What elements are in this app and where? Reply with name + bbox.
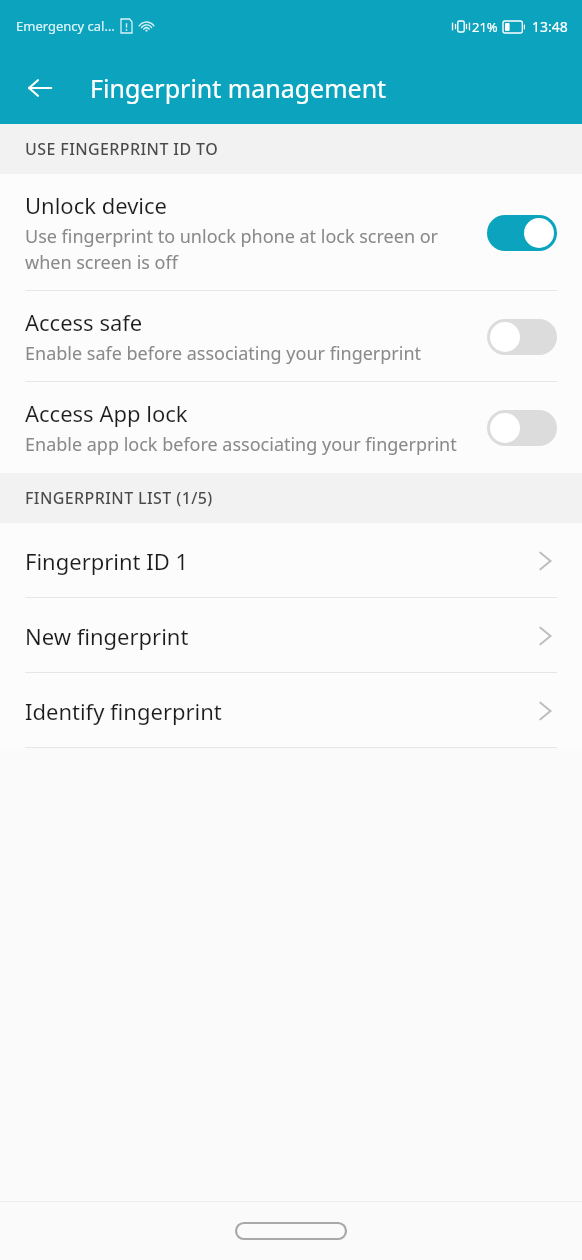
button[interactable]: Back [12, 60, 68, 116]
staticText: Access safe [25, 307, 143, 337]
staticText: New fingerprint [25, 621, 189, 651]
button[interactable]: New fingerprint [0, 598, 582, 673]
staticText: Fingerprint management [90, 71, 387, 105]
button[interactable]: Identify fingerprint [0, 673, 582, 748]
staticText: Enable safe before associating your fing… [25, 341, 422, 366]
button[interactable]: Access App lock [0, 382, 582, 473]
staticText: Identify fingerprint [25, 696, 222, 726]
button[interactable]: Off [487, 319, 557, 355]
button[interactable]: Unlock device [0, 174, 582, 291]
button[interactable]: Fingerprint ID 1 [0, 523, 582, 598]
staticText: Emergency cal… [16, 17, 115, 35]
staticText: Access App lock [25, 398, 188, 428]
staticText: Use fingerprint to unlock phone at lock … [25, 224, 473, 275]
button[interactable]: On [487, 215, 557, 251]
staticText: FINGERPRINT LIST (1/5) [25, 487, 213, 509]
staticText: Enable app lock before associating your … [25, 432, 457, 457]
staticText: 13:48 [532, 17, 568, 36]
staticText: USE FINGERPRINT ID TO [25, 138, 219, 160]
staticText: 21% [472, 18, 498, 36]
button[interactable]: Home [236, 1223, 346, 1239]
staticText: Fingerprint ID 1 [25, 546, 189, 576]
button[interactable]: Off [487, 410, 557, 446]
staticText: Unlock device [25, 190, 168, 220]
button[interactable]: Access safe [0, 291, 582, 382]
